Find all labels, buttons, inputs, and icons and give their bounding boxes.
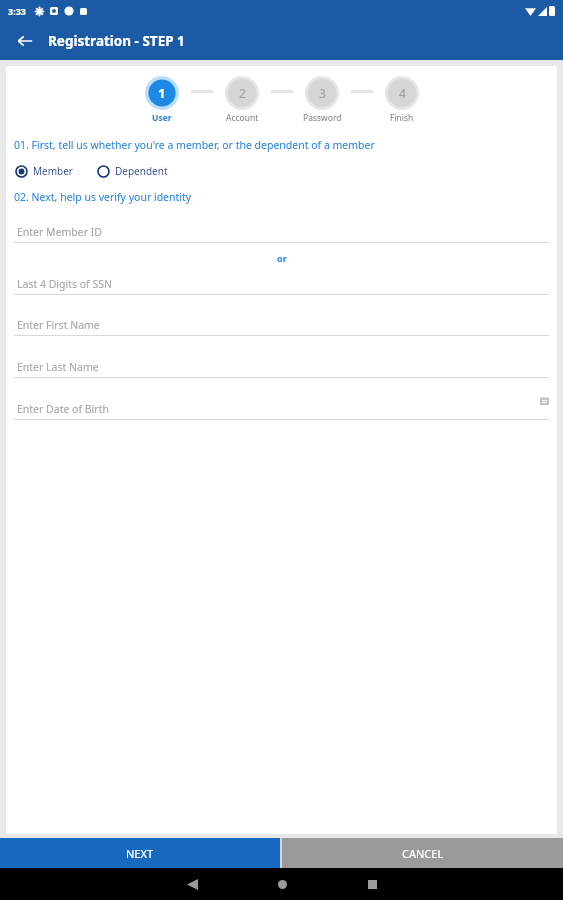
staticText: 4: [399, 85, 406, 101]
button[interactable]: Last 4 Digits of SSN: [14, 273, 549, 295]
button[interactable]: Enter Last Name: [14, 356, 549, 378]
button[interactable]: Enter Date of Birth: [14, 398, 549, 420]
button[interactable]: Recents: [355, 868, 389, 900]
staticText: or: [277, 252, 287, 264]
staticText: 3: [319, 85, 326, 101]
staticText: Last 4 Digits of SSN: [17, 277, 112, 291]
staticText: NEXT: [126, 846, 154, 861]
button[interactable]: Enter Member ID: [14, 221, 549, 243]
button[interactable]: Member: [15, 164, 75, 178]
other: Pick date: [540, 396, 549, 405]
button[interactable]: 1: [133, 76, 191, 124]
staticText: Enter Member ID: [17, 225, 103, 239]
staticText: 02. Next, help us verify your identity: [14, 190, 192, 204]
button[interactable]: Enter First Name: [14, 314, 549, 336]
staticText: Account: [226, 112, 259, 124]
staticText: User: [152, 112, 172, 124]
staticText: 1: [158, 84, 166, 102]
button[interactable]: 4: [373, 76, 431, 124]
button[interactable]: Dependent: [97, 164, 170, 178]
staticText: Finish: [390, 112, 414, 124]
button[interactable]: 3: [293, 76, 351, 124]
staticText: Member: [33, 164, 73, 178]
button[interactable]: Home: [265, 868, 299, 900]
staticText: 2: [239, 85, 246, 101]
staticText: Enter Date of Birth: [17, 402, 109, 416]
button[interactable]: Back: [175, 868, 209, 900]
staticText: 3:33: [8, 5, 26, 17]
button[interactable]: NEXT: [0, 838, 280, 868]
staticText: Dependent: [115, 164, 168, 178]
staticText: 01. First, tell us whether you're a memb…: [14, 138, 375, 152]
staticText: Enter First Name: [17, 318, 100, 332]
staticText: CANCEL: [402, 846, 444, 861]
button[interactable]: 2: [213, 76, 271, 124]
staticText: Password: [303, 112, 342, 124]
staticText: Registration - STEP 1: [48, 32, 185, 50]
button[interactable]: CANCEL: [282, 838, 563, 868]
button[interactable]: Back: [10, 26, 40, 56]
staticText: Enter Last Name: [17, 360, 99, 374]
